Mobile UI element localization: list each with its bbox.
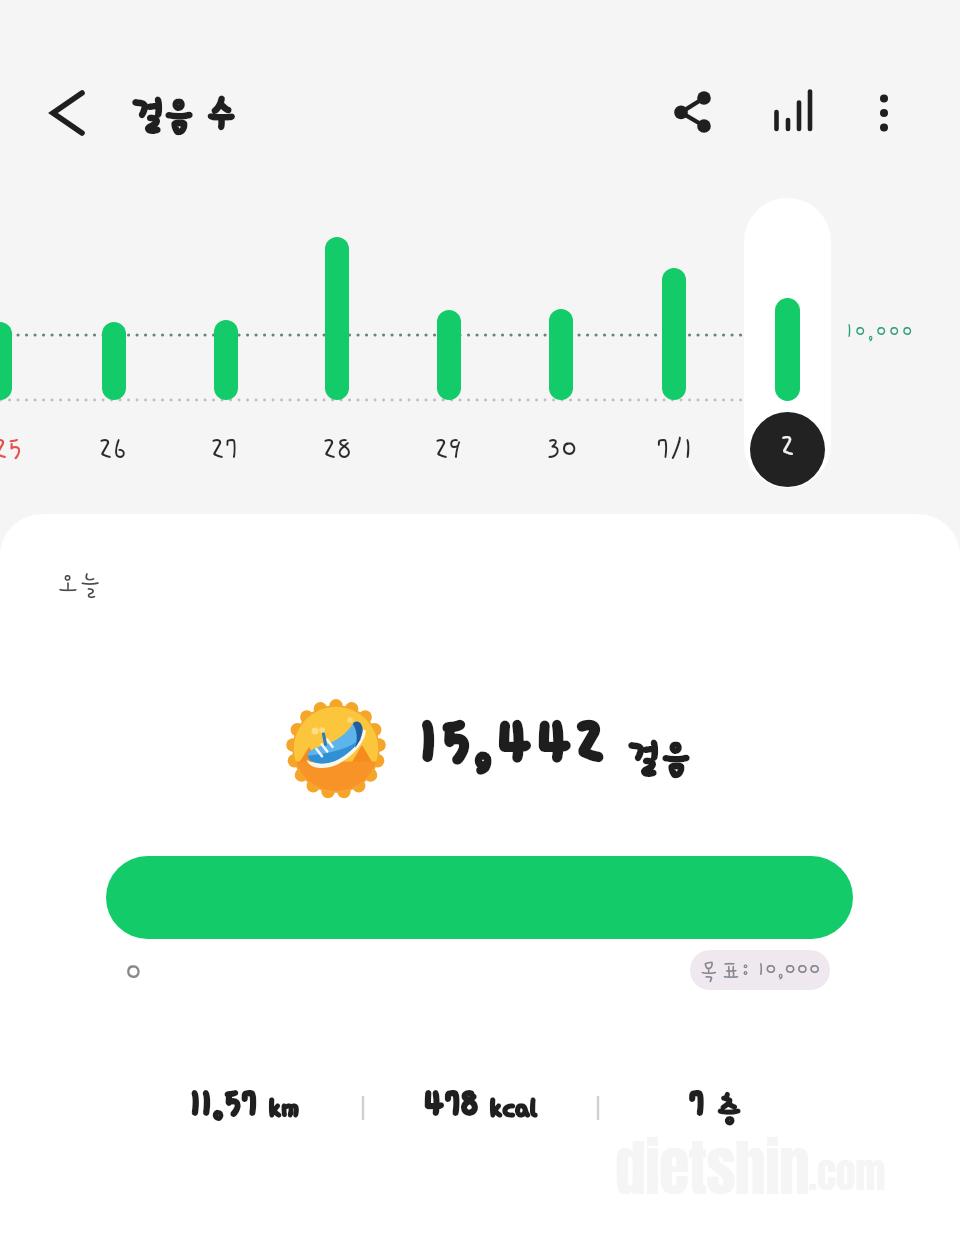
button[interactable] — [744, 198, 831, 488]
staticText: kcal — [480, 1093, 539, 1127]
staticText: 층 — [706, 1093, 744, 1127]
staticText: 층 — [706, 1093, 744, 1127]
staticText: 30 — [547, 434, 579, 470]
staticText: 2 — [781, 431, 794, 467]
staticText: 오늘 — [56, 569, 101, 599]
staticText: 15,442 — [421, 713, 610, 783]
staticText: km — [259, 1093, 300, 1127]
staticText: 11.57 — [191, 1086, 259, 1128]
staticText: 15,442 — [421, 713, 610, 783]
staticText: 7/1 — [657, 434, 694, 470]
staticText: 28 — [323, 434, 353, 470]
staticText: 26 — [99, 434, 128, 470]
staticText: 7 — [690, 1086, 706, 1128]
staticText: 25 — [0, 434, 23, 470]
button[interactable]: Share — [657, 76, 729, 148]
staticText: dietshin — [615, 1121, 809, 1214]
staticText: 10,000 — [847, 322, 916, 345]
button[interactable]: Selected day 2 — [750, 412, 825, 487]
staticText: 29 — [435, 434, 463, 470]
staticText: .com — [808, 1143, 885, 1203]
staticText: 목표: 10,000 — [699, 958, 822, 983]
staticText: 걸음 수 — [131, 94, 238, 134]
staticText: 0 — [126, 957, 141, 993]
staticText: 7 — [690, 1086, 706, 1128]
button[interactable]: Statistics — [760, 76, 832, 148]
staticText: 걸음 수 — [131, 94, 238, 134]
staticText: 걸음 — [627, 737, 694, 777]
button[interactable]: More options — [848, 76, 920, 148]
staticText: 11.57 — [191, 1086, 259, 1128]
staticText: 478 — [424, 1086, 480, 1128]
staticText: 걸음 — [627, 737, 694, 777]
button[interactable]: Back — [30, 78, 100, 148]
staticText: kcal — [480, 1093, 539, 1127]
staticText: 478 — [424, 1086, 480, 1128]
staticText: km — [259, 1093, 300, 1127]
staticText: 27 — [211, 434, 239, 470]
